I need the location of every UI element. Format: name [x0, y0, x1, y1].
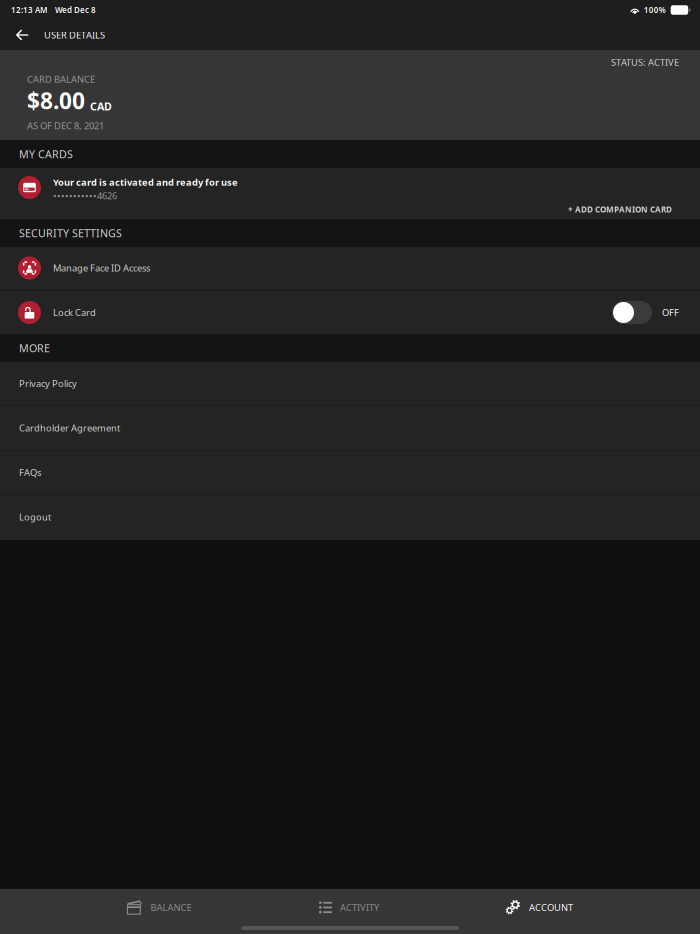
button[interactable]: Privacy Policy: [0, 362, 700, 406]
staticText: STATUS: ACTIVE: [611, 56, 679, 68]
button[interactable]: Back: [5, 20, 39, 50]
staticText: 100%: [644, 5, 666, 15]
staticText: CARD BALANCE: [27, 73, 95, 85]
staticText: $8.00: [27, 85, 85, 115]
staticText: Privacy Policy: [19, 377, 77, 390]
staticText: Cardholder Agreement: [19, 422, 120, 434]
button[interactable]: ACTIVITY: [254, 889, 444, 926]
staticText: Lock Card: [53, 306, 96, 319]
staticText: Logout: [19, 511, 51, 523]
staticText: USER DETAILS: [44, 29, 105, 41]
staticText: FAQs: [19, 466, 41, 479]
button[interactable]: Logout: [0, 495, 700, 540]
button[interactable]: BALANCE: [64, 889, 254, 926]
staticText: 12:13 AM: [11, 5, 47, 15]
button[interactable]: FAQs: [0, 451, 700, 495]
button[interactable]: Your card is activated and ready for use: [0, 168, 700, 219]
staticText: Wed Dec 8: [55, 5, 96, 15]
staticText: MY CARDS: [19, 147, 73, 161]
button[interactable]: Cardholder Agreement: [0, 406, 700, 451]
button[interactable]: ACCOUNT: [444, 889, 634, 926]
button[interactable]: Manage Face ID Access: [0, 247, 700, 289]
staticText: •••••••••••4626: [53, 189, 117, 202]
staticText: MORE: [19, 341, 50, 355]
staticText: AS OF DEC 8, 2021: [27, 119, 104, 132]
staticText: ACCOUNT: [529, 901, 573, 914]
staticText: Your card is activated and ready for use: [53, 176, 238, 188]
staticText: SECURITY SETTINGS: [19, 226, 122, 240]
staticText: Manage Face ID Access: [53, 262, 150, 274]
staticText: ACTIVITY: [340, 901, 379, 914]
button[interactable]: Lock Card: [0, 291, 700, 334]
staticText: CAD: [90, 99, 112, 113]
staticText: OFF: [662, 306, 679, 319]
staticText: + ADD COMPANION CARD: [568, 204, 672, 215]
staticText: BALANCE: [150, 901, 191, 914]
